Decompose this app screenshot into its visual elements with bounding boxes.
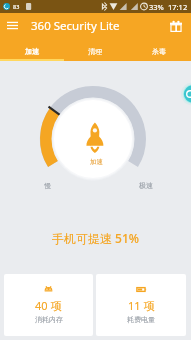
button[interactable]: 杀毒 bbox=[127, 38, 191, 61]
staticText: 83 bbox=[13, 3, 20, 10]
button[interactable]: 11 项 bbox=[96, 274, 186, 336]
staticText: 11 项 bbox=[128, 298, 155, 313]
staticText: 杀毒 bbox=[152, 47, 166, 56]
button[interactable]: Gifts bbox=[163, 13, 188, 38]
button[interactable]: 加速 bbox=[0, 38, 63, 61]
button[interactable]: Menu bbox=[0, 13, 25, 38]
staticText: 40 项 bbox=[35, 298, 62, 313]
staticText: 消耗内存 bbox=[35, 315, 63, 324]
staticText: 手机可提速 51% bbox=[0, 230, 191, 246]
button[interactable]: 清理 bbox=[63, 38, 127, 61]
button[interactable]: 40 项 bbox=[4, 274, 93, 336]
staticText: 33% bbox=[149, 2, 164, 12]
staticText: 加速 bbox=[1, 158, 191, 166]
staticText: 慢 bbox=[44, 181, 51, 190]
staticText: 360 Security Lite bbox=[31, 18, 120, 34]
staticText: 17:12 bbox=[168, 2, 188, 12]
staticText: 清理 bbox=[88, 47, 102, 56]
staticText: 极速 bbox=[139, 181, 153, 190]
staticText: 耗费电量 bbox=[127, 315, 155, 324]
staticText: 加速 bbox=[25, 47, 39, 56]
